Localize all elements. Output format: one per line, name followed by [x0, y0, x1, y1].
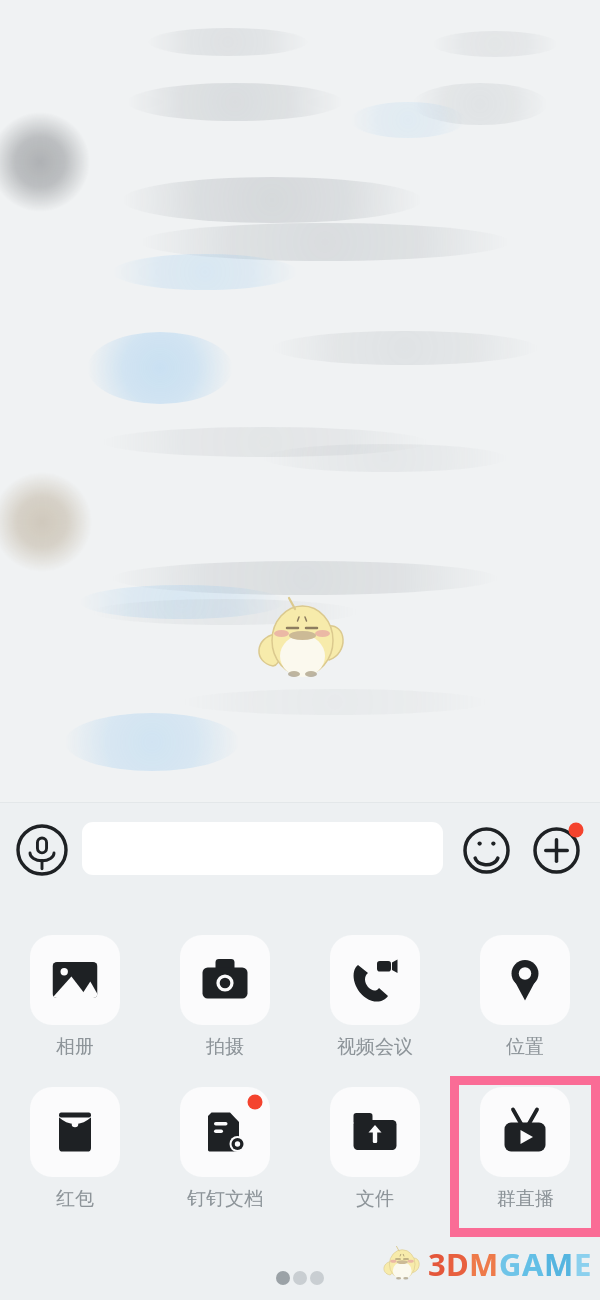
button[interactable]: More actions [533, 827, 580, 874]
button[interactable]: 拍摄 [180, 935, 270, 1059]
button[interactable]: 视频会议 [330, 935, 420, 1059]
button[interactable]: 位置 [480, 935, 570, 1059]
button[interactable]: Voice message [15, 823, 69, 877]
staticText: 群直播 [497, 1187, 554, 1211]
button[interactable]: 群直播 [480, 1087, 570, 1211]
staticText: M [469, 1243, 499, 1285]
staticText: 文件 [356, 1187, 394, 1211]
button[interactable]: 钉钉文档 [180, 1087, 270, 1211]
button[interactable]: 文件 [330, 1087, 420, 1211]
staticText: E [574, 1243, 592, 1285]
staticText: 相册 [56, 1035, 94, 1059]
staticText: M [544, 1243, 574, 1285]
staticText: 钉钉文档 [187, 1187, 263, 1211]
staticText: 位置 [506, 1035, 544, 1059]
button[interactable]: Emoji [463, 827, 510, 874]
staticText: 视频会议 [337, 1035, 413, 1059]
staticText: A [522, 1243, 544, 1285]
staticText: D [446, 1243, 469, 1285]
staticText: G [499, 1243, 522, 1285]
staticText: 拍摄 [206, 1035, 244, 1059]
staticText: 红包 [56, 1187, 94, 1211]
button[interactable]: 红包 [30, 1087, 120, 1211]
staticText: 3 [428, 1243, 446, 1285]
button[interactable]: 相册 [30, 935, 120, 1059]
